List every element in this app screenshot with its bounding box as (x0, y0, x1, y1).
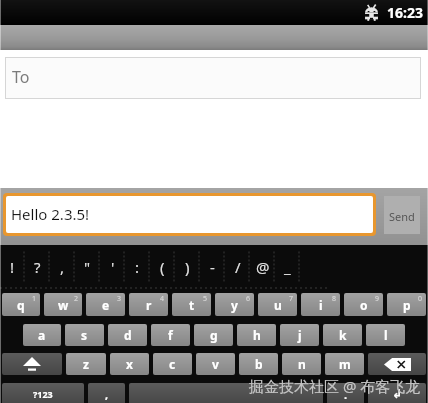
staticText: e (102, 297, 110, 313)
staticText: , (105, 387, 109, 402)
staticText: x (126, 356, 133, 372)
staticText: Send (389, 209, 415, 224)
button[interactable]: j (280, 324, 319, 346)
staticText: s (81, 327, 88, 343)
staticText: i (319, 297, 323, 313)
staticText (224, 386, 228, 402)
staticText: " (84, 257, 91, 277)
button[interactable]: a (23, 324, 61, 346)
button[interactable]: / (225, 245, 250, 288)
staticText: m (339, 356, 351, 372)
staticText: u (274, 297, 282, 313)
staticText: w (58, 297, 69, 313)
staticText: ↲ (392, 387, 403, 401)
button[interactable]: q (2, 293, 40, 316)
staticText: ?123 (33, 388, 53, 400)
staticText: : (135, 257, 140, 277)
button[interactable]: To (5, 57, 421, 99)
staticText: k (339, 327, 347, 343)
staticText: ( (160, 257, 165, 277)
button[interactable]: ? (25, 245, 50, 288)
staticText: y (231, 297, 238, 313)
button[interactable]: n (282, 353, 321, 375)
button[interactable]: " (75, 245, 100, 288)
staticText: 3 (117, 294, 122, 304)
staticText: v (212, 356, 219, 372)
staticText: ) (185, 257, 190, 277)
button[interactable]: x (110, 353, 149, 375)
staticText: 5 (203, 294, 208, 304)
button[interactable]: , (50, 245, 75, 288)
staticText: o (360, 297, 368, 313)
button[interactable]: t (172, 293, 211, 316)
button[interactable]: Shift (2, 353, 62, 375)
staticText: 9 (375, 294, 380, 304)
button[interactable]: d (108, 324, 147, 346)
staticText: 6 (246, 294, 251, 304)
button[interactable]: @ (250, 245, 275, 288)
staticText: ! (10, 257, 15, 277)
staticText: g (210, 327, 218, 343)
button[interactable]: b (239, 353, 278, 375)
button[interactable]: ) (175, 245, 200, 288)
button[interactable]: _ (275, 245, 300, 288)
staticText: p (403, 297, 411, 313)
staticText: To (12, 66, 30, 88)
button[interactable]: Send (384, 196, 420, 234)
button[interactable]: z (66, 353, 106, 375)
staticText: 7 (289, 294, 294, 304)
button[interactable]: m (325, 353, 364, 375)
staticText: 8 (332, 294, 337, 304)
button[interactable]: ( (150, 245, 175, 288)
button[interactable]: f (151, 324, 190, 346)
button[interactable]: Backspace (368, 353, 426, 375)
button[interactable]: h (237, 324, 276, 346)
button[interactable]: : (125, 245, 150, 288)
button[interactable]: c (153, 353, 192, 375)
button[interactable]: s (65, 324, 104, 346)
button[interactable]: o (344, 293, 383, 316)
button[interactable]: v (196, 353, 235, 375)
button[interactable]: - (200, 245, 225, 288)
button[interactable]: i (301, 293, 340, 316)
staticText: _ (284, 257, 291, 277)
staticText: q (17, 297, 25, 313)
staticText: , (60, 257, 65, 277)
staticText: l (384, 327, 388, 343)
button[interactable]: ↲ (368, 383, 426, 403)
staticText: r (146, 297, 152, 313)
staticText: - (210, 257, 215, 277)
staticText: 1 (32, 294, 37, 304)
button[interactable]: p (387, 293, 426, 316)
button[interactable]: Hello 2.3.5! (6, 196, 373, 233)
staticText: 0 (418, 294, 423, 304)
staticText: . (344, 387, 348, 402)
staticText: c (169, 356, 176, 372)
staticText: @ (256, 257, 270, 277)
staticText: / (235, 257, 241, 277)
button[interactable]: . (327, 383, 364, 403)
button[interactable]: e (86, 293, 125, 316)
button[interactable]: ! (0, 245, 25, 288)
staticText: a (38, 327, 46, 343)
button[interactable]: g (194, 324, 233, 346)
staticText: Hello 2.3.5! (11, 204, 90, 224)
button[interactable]: l (366, 324, 405, 346)
button[interactable]: w (44, 293, 82, 316)
button[interactable]: u (258, 293, 297, 316)
button[interactable]: y (215, 293, 254, 316)
button[interactable]: ' (100, 245, 125, 288)
staticText: ' (111, 257, 115, 277)
staticText: j (298, 327, 302, 343)
button[interactable]: r (129, 293, 168, 316)
button[interactable]: ?123 (2, 383, 84, 403)
staticText: 16:23 (387, 3, 423, 22)
button[interactable]: k (323, 324, 362, 346)
button[interactable]: , (88, 383, 125, 403)
staticText: b (255, 356, 263, 372)
staticText: d (124, 327, 132, 343)
staticText: 2 (74, 294, 79, 304)
staticText: ? (34, 257, 41, 277)
staticText: 4 (160, 294, 165, 304)
button[interactable] (129, 383, 323, 403)
